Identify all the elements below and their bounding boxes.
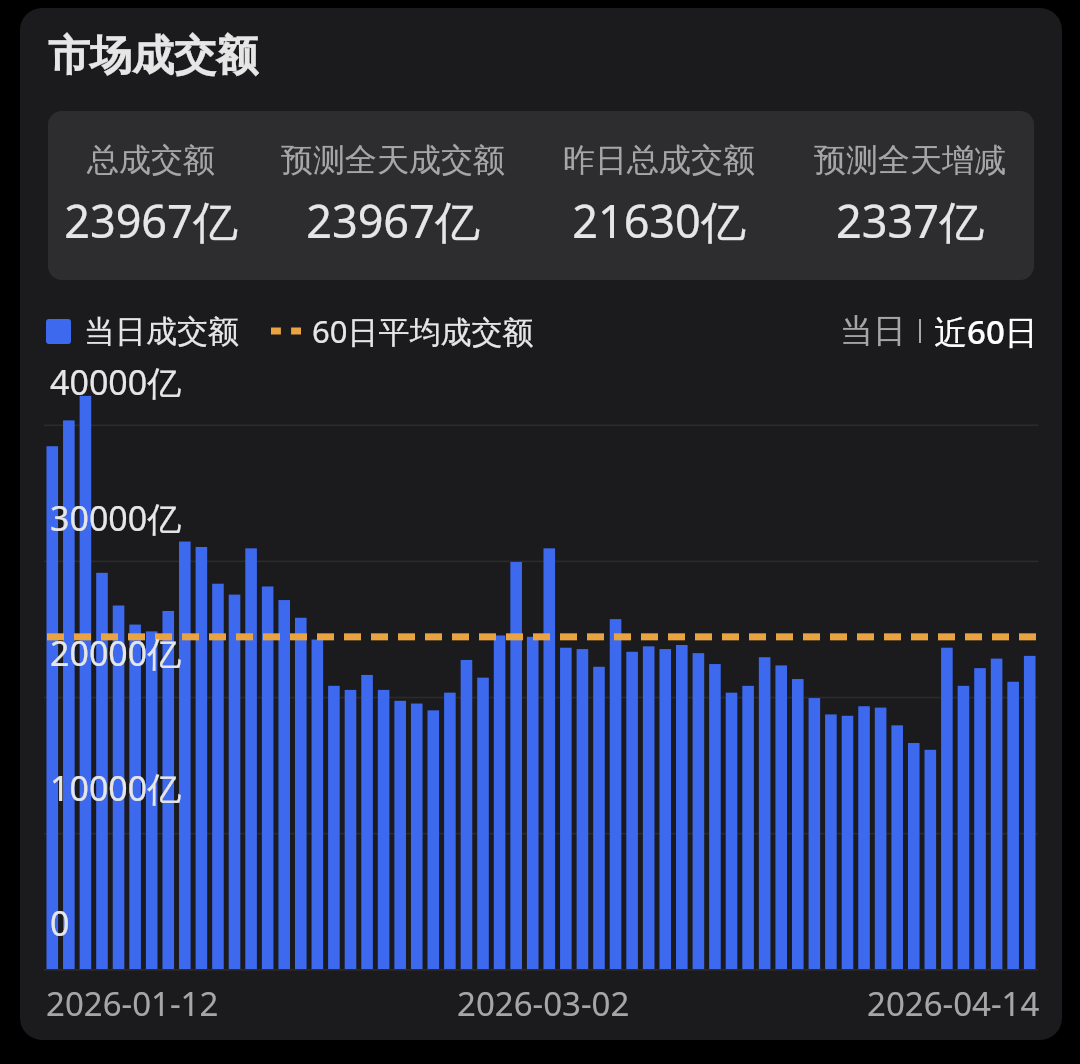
staticText: 总成交额 bbox=[87, 140, 215, 180]
staticText: 23967亿 bbox=[306, 190, 480, 251]
staticText: 2026-04-14 bbox=[867, 981, 1040, 1026]
button[interactable]: 近60日 bbox=[934, 309, 1038, 354]
staticText: 60日平均成交额 bbox=[312, 310, 534, 352]
staticText: 30000亿 bbox=[50, 495, 182, 541]
staticText: 预测全天增减 bbox=[814, 140, 1006, 180]
staticText: 23967亿 bbox=[64, 190, 238, 251]
button[interactable]: 当日成交额 bbox=[46, 312, 239, 351]
staticText: 昨日总成交额 bbox=[563, 140, 755, 180]
staticText: 0 bbox=[50, 900, 70, 946]
staticText: 2026-03-02 bbox=[457, 981, 630, 1026]
staticText: 市场成交额 bbox=[48, 30, 258, 83]
button[interactable]: 当日 bbox=[840, 310, 906, 352]
button[interactable]: 60日平均成交额 bbox=[271, 310, 534, 352]
staticText: 2337亿 bbox=[836, 190, 984, 251]
staticText: 预测全天成交额 bbox=[281, 140, 505, 180]
staticText: 当日成交额 bbox=[84, 312, 239, 351]
staticText: 21630亿 bbox=[572, 190, 746, 251]
staticText: 2026-01-12 bbox=[46, 981, 219, 1026]
button[interactable]: 总成交额 bbox=[48, 111, 1034, 280]
staticText: 20000亿 bbox=[50, 630, 182, 676]
staticText: 10000亿 bbox=[50, 765, 182, 811]
staticText: 40000亿 bbox=[50, 359, 182, 405]
